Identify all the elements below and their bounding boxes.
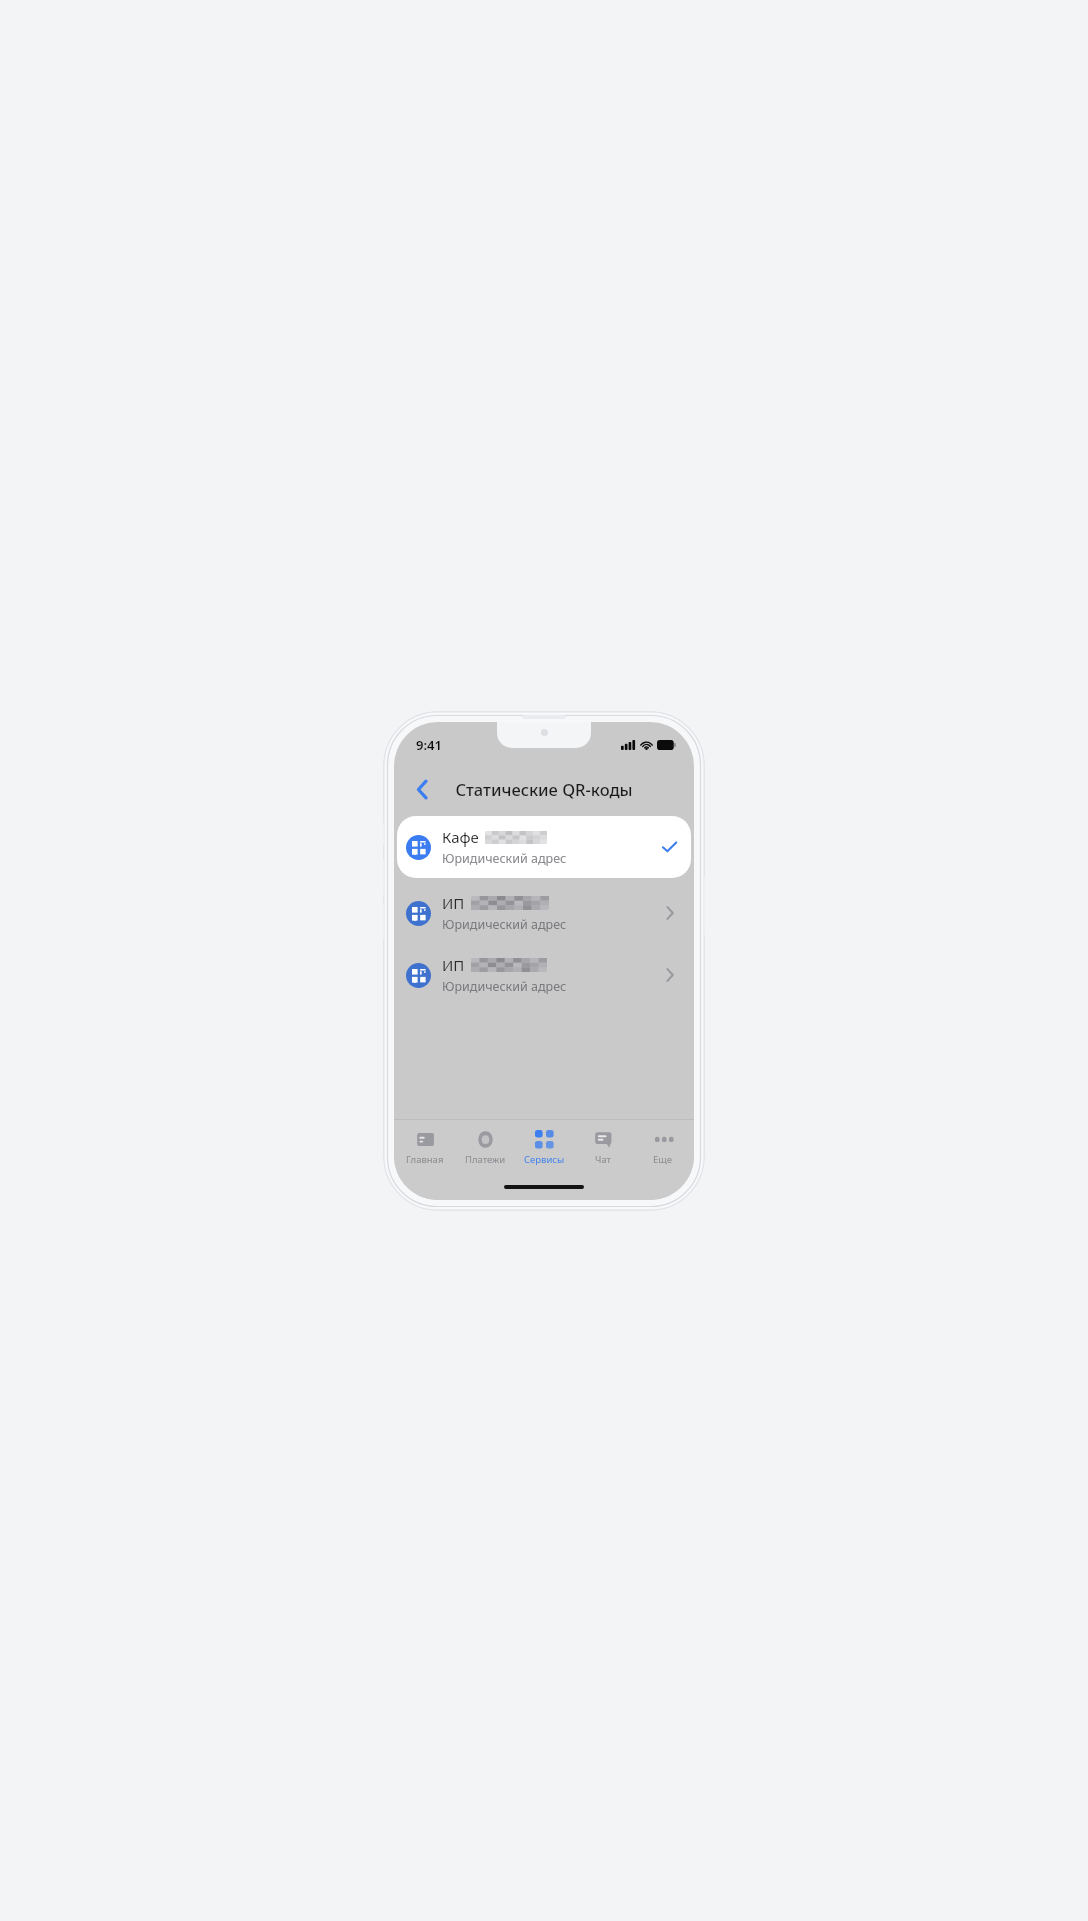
- button[interactable]: Чат: [575, 1128, 631, 1168]
- staticText: Чат: [595, 1153, 611, 1166]
- staticText: Главная: [406, 1153, 444, 1166]
- staticText: Платежи: [465, 1153, 506, 1166]
- staticText: Юридический адрес: [442, 850, 567, 867]
- button[interactable]: Сервисы: [516, 1128, 572, 1168]
- staticText: Еще: [653, 1153, 673, 1166]
- staticText: Кафе: [442, 827, 479, 847]
- button[interactable]: Главная: [397, 1128, 453, 1168]
- other: Selected: [656, 834, 682, 860]
- button[interactable]: ИП: [394, 944, 694, 1006]
- staticText: Статические QR-коды: [455, 778, 633, 800]
- button[interactable]: Back: [402, 769, 442, 809]
- button[interactable]: Еще: [635, 1128, 691, 1168]
- staticText: Юридический адрес: [442, 978, 567, 995]
- button[interactable]: ИП: [394, 882, 694, 944]
- staticText: ИП: [442, 955, 465, 975]
- staticText: 9:41: [416, 736, 442, 754]
- button[interactable]: Платежи: [457, 1128, 513, 1168]
- other: Open: [658, 963, 682, 987]
- other: Open: [658, 901, 682, 925]
- staticText: Юридический адрес: [442, 916, 567, 933]
- button[interactable]: Кафе: [397, 816, 691, 878]
- staticText: ИП: [442, 893, 465, 913]
- staticText: Сервисы: [524, 1153, 565, 1166]
